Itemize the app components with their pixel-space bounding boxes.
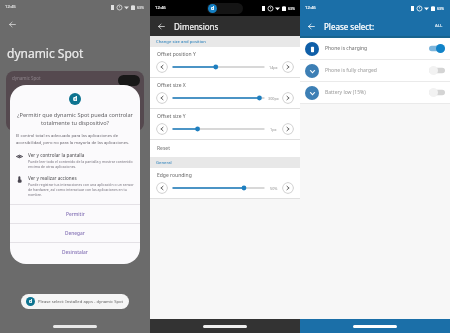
button[interactable]: Toggle	[429, 88, 445, 97]
button[interactable]: Desinstalar	[10, 243, 140, 261]
staticText: 14px	[269, 65, 278, 70]
staticText: Phone is fully charged	[325, 67, 377, 74]
staticText: d	[73, 94, 78, 104]
staticText: d	[29, 298, 33, 305]
staticText: Ver y realizar acciones	[28, 175, 77, 181]
staticText: El control total es adecuado para las ap…	[16, 133, 134, 145]
staticText: Offset size Y	[157, 113, 186, 120]
button[interactable]: Toggle	[429, 44, 445, 53]
button[interactable]: Decrease	[156, 182, 168, 194]
button[interactable]: Phone is fully charged	[300, 60, 450, 81]
staticText: Puede leer todo el contenido de la panta…	[28, 159, 133, 169]
button[interactable]: d	[21, 294, 129, 309]
staticText: 300px	[268, 96, 279, 101]
button[interactable]: Increase	[282, 123, 294, 135]
staticText: ALL	[435, 23, 443, 29]
button[interactable]: Increase	[282, 61, 294, 73]
staticText: ¿Permitir que dynamic Spot pueda control…	[16, 111, 134, 127]
staticText: Phone is charging	[325, 45, 368, 52]
staticText: Denegar	[65, 230, 85, 237]
button[interactable]: Denegar	[10, 224, 140, 242]
staticText: 12:46	[155, 5, 166, 11]
button[interactable]: Back	[305, 20, 317, 32]
staticText: Puede registrar tus interacciones con un…	[28, 182, 134, 197]
staticText: 12:46	[305, 5, 316, 11]
staticText: Please select:	[324, 21, 375, 32]
staticText: Ver y controlar la pantalla	[28, 152, 85, 158]
button[interactable]: Reset	[150, 140, 300, 157]
button[interactable]: ALL	[433, 21, 445, 31]
staticText: Please select: Installed apps - dynamic …	[38, 299, 124, 305]
staticText: General	[156, 160, 172, 166]
button[interactable]: Back	[5, 17, 19, 31]
button[interactable]: Permitir	[10, 205, 140, 223]
staticText: d	[211, 5, 215, 12]
staticText: Offset size X	[157, 82, 186, 89]
button[interactable]: Decrease	[156, 92, 168, 104]
button[interactable]: Back	[155, 20, 167, 32]
staticText: 12:45	[5, 4, 16, 10]
button[interactable]: Toggle	[429, 66, 445, 75]
button[interactable]: Decrease	[156, 61, 168, 73]
staticText: 63%	[137, 5, 145, 10]
staticText: dynamic Spot	[12, 75, 41, 81]
staticText: Reset	[157, 145, 170, 152]
staticText: 1px	[270, 127, 277, 132]
button[interactable]: Battery low (15%)	[300, 82, 450, 103]
button[interactable]: Increase	[282, 92, 294, 104]
staticText: Change size and position	[156, 39, 206, 45]
staticText: dynamic Spot	[7, 45, 84, 61]
button[interactable]: Increase	[282, 182, 294, 194]
staticText: Dimensions	[174, 21, 219, 32]
button[interactable]: Phone is charging	[300, 38, 450, 59]
staticText: Edge rounding	[157, 172, 192, 179]
staticText: 63%	[437, 6, 445, 11]
staticText: Offset position Y	[157, 51, 196, 58]
staticText: Battery low (15%)	[325, 89, 366, 96]
staticText: 63%	[288, 6, 296, 11]
button[interactable]: Decrease	[156, 123, 168, 135]
staticText: 50%	[270, 186, 278, 191]
staticText: Desinstalar	[62, 249, 88, 256]
staticText: Permitir	[66, 211, 85, 218]
